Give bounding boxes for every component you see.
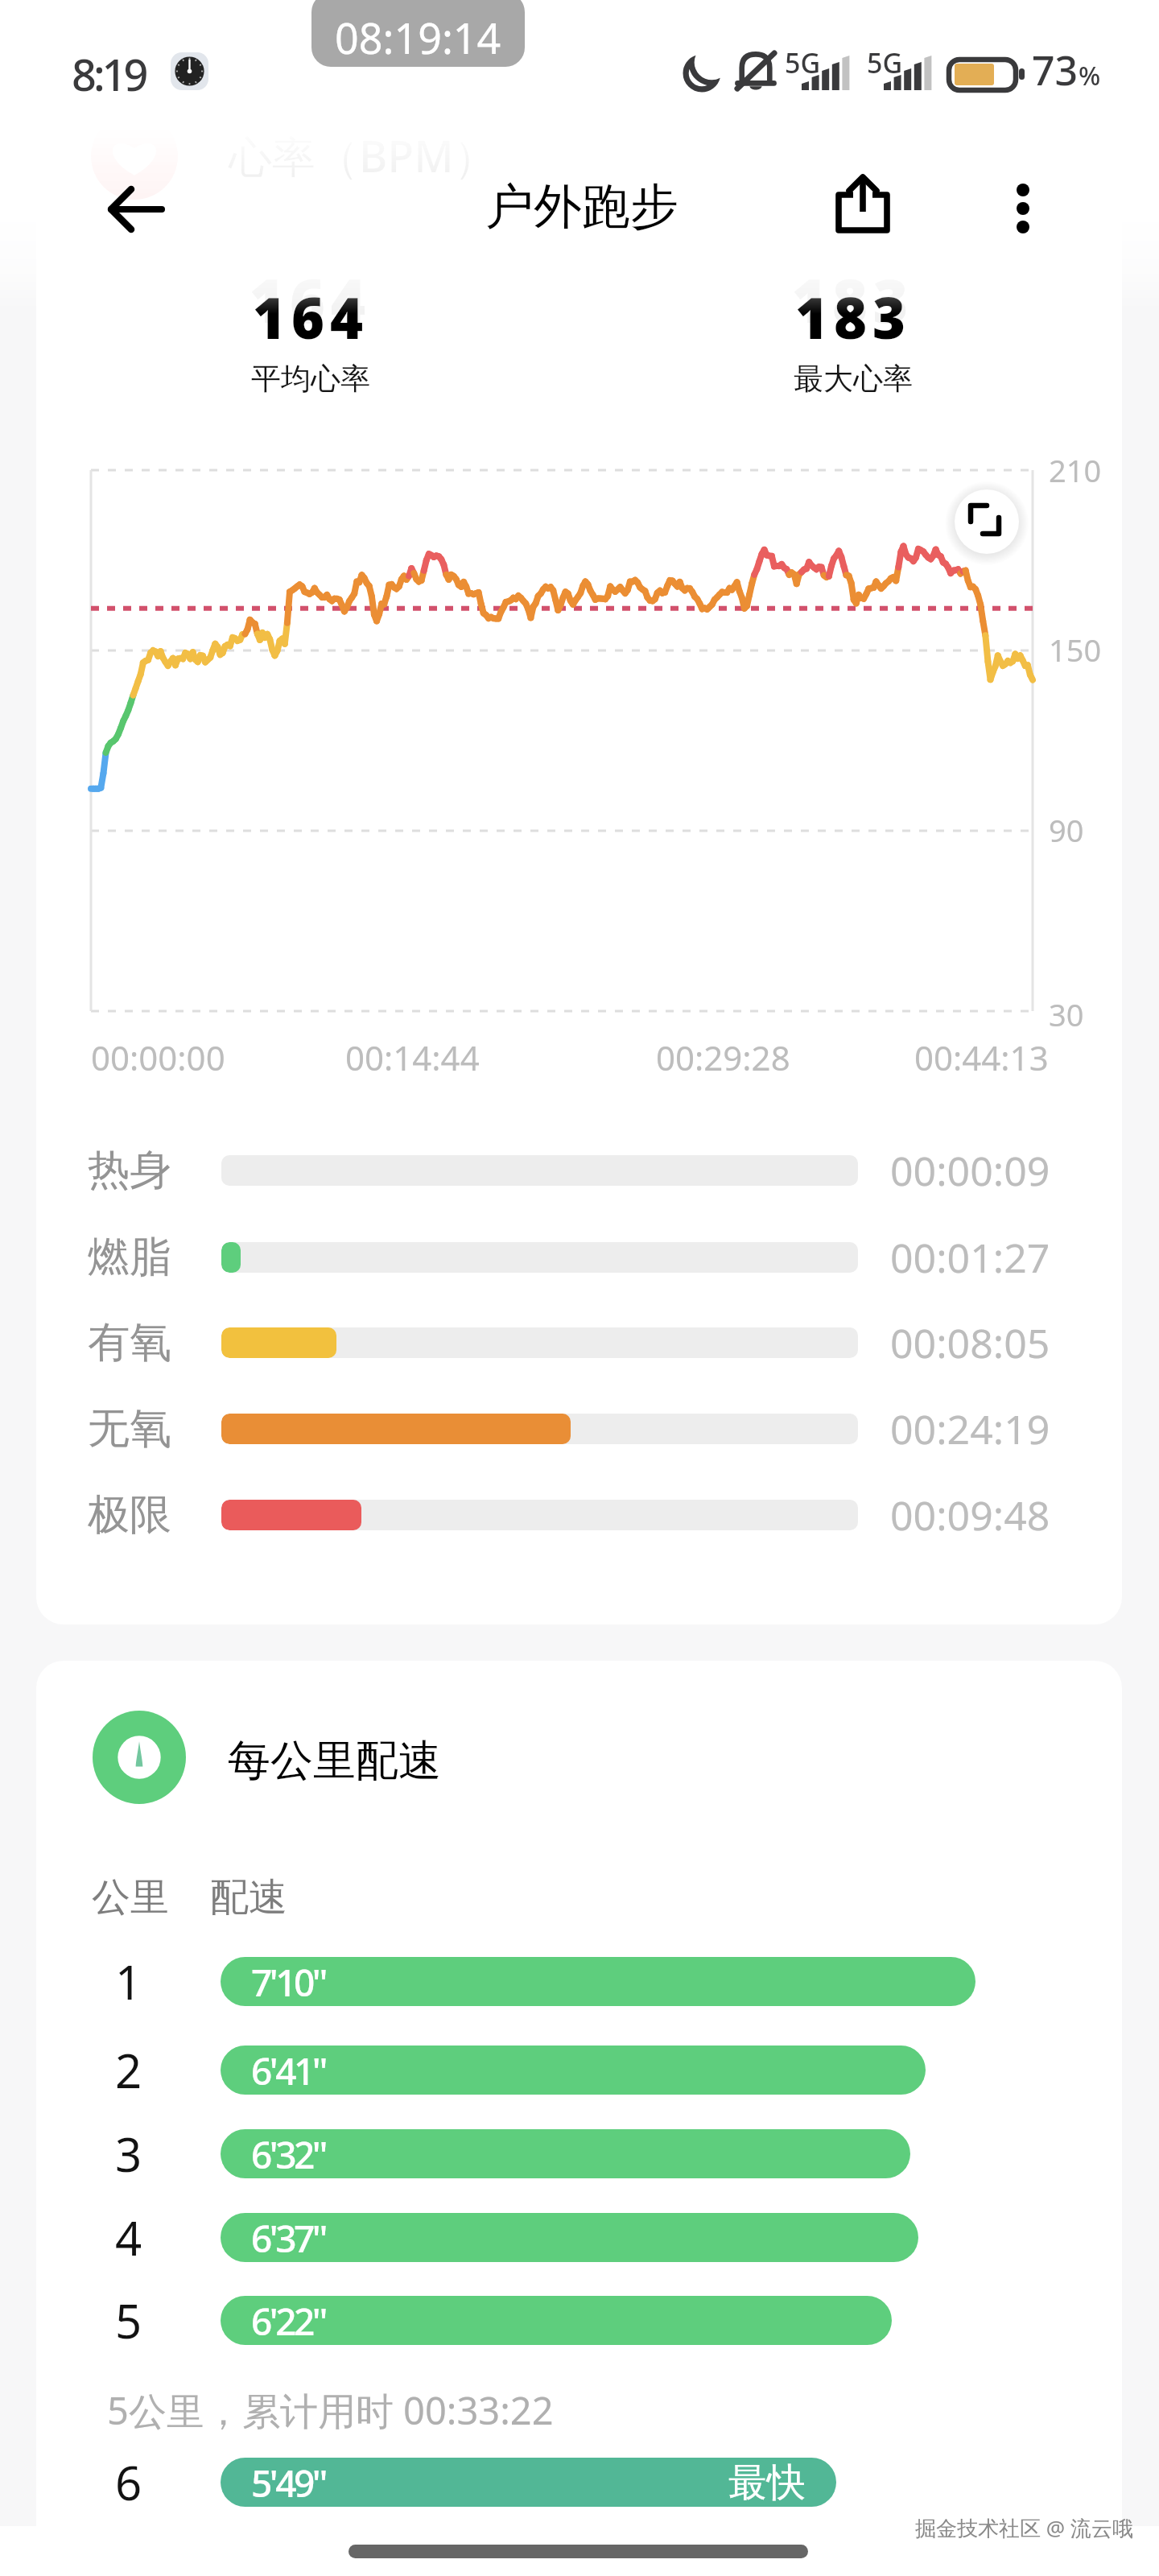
staticText: 最快 bbox=[728, 2458, 806, 2507]
staticText: 5G bbox=[785, 44, 821, 81]
staticText: 8:19 bbox=[72, 44, 146, 104]
staticText: 1 bbox=[115, 1950, 142, 2013]
staticText: 掘金技术社区 @ 流云哦 bbox=[915, 2513, 1133, 2542]
staticText: 5公里，累计用时 00:33:22 bbox=[107, 2384, 554, 2436]
button[interactable]: 4 bbox=[36, 2194, 1122, 2281]
staticText: 6'41" bbox=[251, 2046, 326, 2095]
staticText: 08:19:14 bbox=[335, 9, 501, 66]
button[interactable]: 6 bbox=[36, 2438, 1122, 2525]
staticText: 有氧 bbox=[88, 1316, 171, 1369]
staticText: 燃脂 bbox=[88, 1231, 171, 1284]
staticText: 00:44:13 bbox=[914, 1034, 1049, 1080]
staticText: 00:00:00 bbox=[91, 1034, 225, 1080]
staticText: 183 bbox=[795, 279, 912, 355]
staticText: 164 bbox=[253, 279, 369, 355]
staticText: 6'37" bbox=[251, 2213, 326, 2262]
staticText: 00:24:19 bbox=[890, 1402, 1050, 1456]
staticText: 5'49" bbox=[251, 2458, 326, 2507]
staticText: 4 bbox=[115, 2206, 142, 2269]
button[interactable]: Fullscreen bbox=[955, 489, 1019, 554]
staticText: 210 bbox=[1049, 449, 1102, 491]
staticText: 90 bbox=[1049, 809, 1084, 851]
staticText: 6'32" bbox=[251, 2129, 326, 2178]
button[interactable]: Back bbox=[88, 161, 184, 258]
button[interactable]: Share bbox=[815, 156, 911, 253]
staticText: 6 bbox=[115, 2450, 142, 2514]
button[interactable]: More options bbox=[975, 160, 1071, 257]
staticText: 公里 bbox=[92, 1873, 169, 1922]
staticText: 183 bbox=[792, 259, 914, 341]
staticText: 配速 bbox=[210, 1873, 287, 1922]
staticText: % bbox=[1079, 58, 1101, 93]
staticText: 150 bbox=[1049, 629, 1102, 671]
staticText: 2 bbox=[115, 2038, 142, 2102]
staticText: 00:00:09 bbox=[890, 1143, 1050, 1198]
staticText: 平均心率 bbox=[251, 360, 370, 398]
button[interactable]: 3 bbox=[36, 2110, 1122, 2197]
staticText: 00:01:27 bbox=[890, 1230, 1050, 1285]
staticText: 00:08:05 bbox=[890, 1315, 1050, 1370]
staticText: 6'22" bbox=[251, 2296, 326, 2345]
staticText: 73 bbox=[1032, 43, 1079, 97]
staticText: 心率（BPM） bbox=[229, 126, 497, 185]
button[interactable]: 5 bbox=[36, 2277, 1122, 2363]
staticText: 00:14:44 bbox=[345, 1034, 480, 1080]
staticText: 最大心率 bbox=[794, 360, 913, 398]
staticText: 00:09:48 bbox=[890, 1488, 1050, 1542]
staticText: 5G bbox=[867, 44, 903, 81]
staticText: 7'10" bbox=[251, 1957, 326, 2006]
staticText: 30 bbox=[1049, 993, 1084, 1035]
staticText: 3 bbox=[115, 2122, 142, 2186]
staticText: 5 bbox=[115, 2289, 142, 2352]
staticText: 164 bbox=[250, 259, 372, 341]
staticText: 热身 bbox=[88, 1144, 171, 1197]
button[interactable]: 2 bbox=[36, 2026, 1122, 2113]
staticText: 每公里配速 bbox=[228, 1734, 441, 1788]
button[interactable]: 08:19:14 bbox=[311, 0, 525, 67]
staticText: 极限 bbox=[88, 1488, 171, 1542]
staticText: 无氧 bbox=[88, 1402, 171, 1455]
button[interactable]: 1 bbox=[36, 1938, 1122, 2025]
staticText: 00:29:28 bbox=[656, 1034, 790, 1080]
staticText: 户外跑步 bbox=[485, 176, 678, 237]
